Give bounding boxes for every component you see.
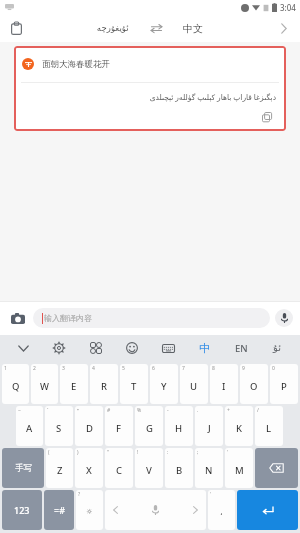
staticText: S (56, 422, 62, 435)
button[interactable]: 2 (31, 364, 58, 404)
staticText: ? (78, 491, 81, 498)
staticText: " (107, 449, 110, 456)
button[interactable]: . (195, 406, 223, 446)
staticText: 0 (272, 365, 275, 372)
button[interactable]: Voice input (275, 309, 293, 327)
button[interactable]: % (135, 406, 163, 446)
button[interactable]: 3 (60, 364, 88, 404)
button[interactable]: Enter (237, 490, 298, 530)
button[interactable]: 7 (180, 364, 208, 404)
button[interactable]: 面朝大海春暖花开 (14, 46, 286, 131)
staticText: J (208, 422, 211, 435)
staticText: EN (235, 342, 248, 355)
staticText: D (86, 422, 93, 435)
button[interactable]: Clipboard history (5, 17, 27, 39)
button[interactable]: 手写 (2, 448, 44, 488)
staticText: 9 (242, 365, 245, 372)
staticText: + (227, 407, 230, 414)
button[interactable]: ? (76, 490, 103, 530)
button[interactable]: 123 (2, 490, 42, 530)
button[interactable]: 6 (150, 364, 178, 404)
button[interactable]: 9 (240, 364, 268, 404)
staticText: H (175, 422, 183, 435)
button[interactable]: ~ (16, 406, 43, 446)
staticText: Y (161, 380, 167, 393)
staticText: C (116, 464, 123, 477)
button[interactable]: 5 (120, 364, 148, 404)
button[interactable]: Emoji (119, 335, 145, 361)
staticText: 面朝大海春暖花开 (42, 59, 110, 70)
staticText: W (40, 380, 49, 393)
button[interactable]: Space (105, 490, 206, 530)
button[interactable]: 输入翻译内容 (33, 308, 270, 328)
staticText: 7 (182, 365, 185, 372)
button[interactable]: 1 (2, 364, 29, 404)
staticText: O (250, 380, 258, 393)
button[interactable]: + (225, 406, 253, 446)
staticText: R (101, 380, 108, 393)
button[interactable]: ; (195, 448, 223, 488)
button[interactable]: More (274, 18, 294, 38)
staticText: % (137, 407, 142, 414)
staticText: . (197, 407, 199, 414)
button[interactable]: Settings (46, 335, 72, 361)
button[interactable]: Collapse keyboard (10, 335, 36, 361)
staticText: N (205, 464, 213, 477)
staticText: X (86, 464, 92, 477)
button[interactable]: ئۇيغۇرچە (93, 21, 133, 35)
button[interactable]: • (75, 406, 103, 446)
staticText: F (116, 422, 122, 435)
staticText: ، (220, 508, 223, 517)
button[interactable]: ! (135, 448, 163, 488)
button[interactable]: ) (75, 448, 103, 488)
staticText: دېگىزغا قاراپ باھار كېلىپ گۈللەر ئېچىلدى (24, 92, 276, 102)
staticText: 3 (62, 365, 65, 372)
staticText: ( (48, 449, 50, 456)
staticText: K (236, 422, 243, 435)
button[interactable]: Keyboard layout (155, 335, 181, 361)
staticText: ☼ (86, 508, 93, 516)
staticText: =# (54, 504, 65, 516)
button[interactable]: ` (45, 406, 73, 446)
staticText: 1 (4, 365, 7, 372)
button[interactable]: ' (225, 448, 253, 488)
button[interactable]: Copy (258, 108, 276, 126)
staticText: - (167, 407, 169, 414)
button[interactable]: Stickers (83, 335, 109, 361)
staticText: # (107, 407, 111, 414)
staticText: T (131, 380, 137, 393)
staticText: U (190, 380, 198, 393)
button[interactable]: " (105, 448, 133, 488)
button[interactable]: =# (44, 490, 74, 530)
button[interactable]: / (255, 406, 283, 446)
staticText: L (266, 422, 272, 435)
staticText: G (146, 422, 153, 435)
staticText: ' (210, 491, 212, 498)
button[interactable]: 4 (90, 364, 118, 404)
button[interactable]: Swap languages (147, 19, 165, 37)
button[interactable]: Camera translate (7, 307, 29, 329)
button[interactable]: 中 (191, 335, 217, 361)
staticText: 中文 (183, 22, 203, 35)
button[interactable]: : (165, 448, 193, 488)
button[interactable]: EN (228, 335, 254, 361)
button[interactable]: ئۇ (264, 335, 290, 361)
button[interactable]: Backspace (255, 448, 298, 488)
button[interactable]: 8 (210, 364, 238, 404)
staticText: 8 (212, 365, 215, 372)
button[interactable]: # (105, 406, 133, 446)
staticText: ! (137, 449, 139, 456)
staticText: / (257, 407, 259, 414)
button[interactable]: - (165, 406, 193, 446)
button[interactable]: ' (208, 490, 235, 530)
staticText: 3:04 (280, 2, 296, 13)
staticText: 中 (199, 341, 210, 355)
button[interactable]: 0 (270, 364, 298, 404)
staticText: Q (12, 380, 20, 393)
button[interactable]: ( (46, 448, 73, 488)
staticText: 123 (14, 504, 30, 516)
button[interactable]: 中文 (179, 20, 207, 37)
staticText: ~ (18, 407, 21, 414)
staticText: A (26, 422, 33, 435)
staticText: ئۇيغۇرچە (97, 23, 129, 33)
